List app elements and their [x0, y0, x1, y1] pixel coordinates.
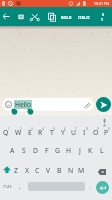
- staticText: A: [10, 146, 15, 155]
- staticText: .: [89, 183, 91, 191]
- button[interactable]: T: [46, 127, 57, 137]
- button[interactable]: [96, 97, 111, 112]
- staticText: L: [100, 146, 104, 155]
- button[interactable]: Z: [10, 165, 21, 175]
- staticText: 9: [97, 127, 99, 131]
- button[interactable]: [96, 181, 109, 194]
- button[interactable]: Hello: [2, 98, 94, 111]
- staticText: R: [38, 128, 43, 137]
- button[interactable]: [0, 12, 14, 22]
- button[interactable]: L: [96, 145, 107, 155]
- staticText: T: [50, 128, 54, 137]
- button[interactable]: H: [63, 145, 74, 155]
- button[interactable]: [46, 12, 58, 22]
- staticText: Hello: [15, 100, 31, 109]
- staticText: E: [28, 128, 32, 137]
- staticText: I: [83, 128, 86, 137]
- staticText: J: [79, 146, 81, 155]
- staticText: G: [55, 146, 60, 155]
- staticText: 18:31 PM: [94, 1, 110, 6]
- button[interactable]: S: [96, 9, 108, 24]
- button[interactable]: B: [54, 165, 65, 175]
- button[interactable]: O: [90, 127, 101, 137]
- staticText: F: [45, 146, 49, 155]
- staticText: 8: [86, 127, 88, 131]
- staticText: 2: [20, 127, 22, 131]
- button[interactable]: ITALIC: [76, 11, 93, 23]
- staticText: 5: [53, 127, 55, 131]
- staticText: 6: [64, 127, 66, 131]
- staticText: O: [93, 128, 99, 137]
- staticText: BOLD: [61, 15, 72, 20]
- button[interactable]: J: [74, 145, 85, 155]
- staticText: V: [46, 166, 51, 175]
- staticText: H: [66, 146, 72, 155]
- staticText: 1: [8, 127, 10, 131]
- button[interactable]: .: [86, 181, 94, 193]
- button[interactable]: R: [35, 127, 46, 137]
- button[interactable]: BOLD: [58, 11, 74, 23]
- staticText: 3: [31, 127, 33, 131]
- staticText: S: [22, 146, 26, 155]
- staticText: B: [57, 166, 62, 175]
- staticText: K: [88, 146, 93, 155]
- button[interactable]: ?123: [0, 179, 14, 193]
- button[interactable]: [29, 12, 41, 22]
- button[interactable]: G: [52, 145, 63, 155]
- button[interactable]: Q: [0, 127, 12, 137]
- button[interactable]: W: [12, 127, 24, 137]
- staticText: W: [15, 128, 22, 137]
- button[interactable]: Y: [57, 127, 68, 137]
- staticText: ,: [19, 183, 21, 191]
- button[interactable]: X: [21, 165, 32, 175]
- staticText: Q: [3, 128, 9, 137]
- button[interactable]: ,: [16, 181, 24, 193]
- staticText: U: [71, 128, 76, 137]
- button[interactable]: [16, 12, 26, 22]
- staticText: 4: [42, 127, 44, 131]
- staticText: ?123: [3, 184, 12, 189]
- button[interactable]: C: [32, 165, 43, 175]
- button[interactable]: A: [6, 145, 18, 155]
- staticText: M: [78, 166, 85, 175]
- staticText: Y: [61, 128, 65, 137]
- button[interactable]: [96, 168, 108, 176]
- staticText: P: [104, 128, 109, 137]
- button[interactable]: D: [30, 145, 41, 155]
- button[interactable]: S: [18, 145, 30, 155]
- staticText: Z: [14, 166, 18, 175]
- button[interactable]: [1, 165, 15, 175]
- staticText: X: [25, 166, 29, 175]
- staticText: S: [102, 12, 104, 17]
- button[interactable]: E: [24, 127, 35, 137]
- button[interactable]: P: [101, 127, 112, 137]
- staticText: N: [68, 166, 74, 175]
- button[interactable]: F: [41, 145, 52, 155]
- button[interactable]: U: [68, 127, 79, 137]
- staticText: 7: [75, 127, 77, 131]
- staticText: 0: [108, 127, 110, 131]
- staticText: ITALIC: [78, 15, 91, 20]
- button[interactable]: M: [76, 165, 87, 175]
- staticText: D: [33, 146, 38, 155]
- button[interactable]: V: [43, 165, 54, 175]
- button[interactable]: N: [65, 165, 76, 175]
- staticText: T: [101, 17, 104, 22]
- staticText: C: [35, 166, 40, 175]
- button[interactable]: I: [79, 127, 90, 137]
- button[interactable]: K: [85, 145, 96, 155]
